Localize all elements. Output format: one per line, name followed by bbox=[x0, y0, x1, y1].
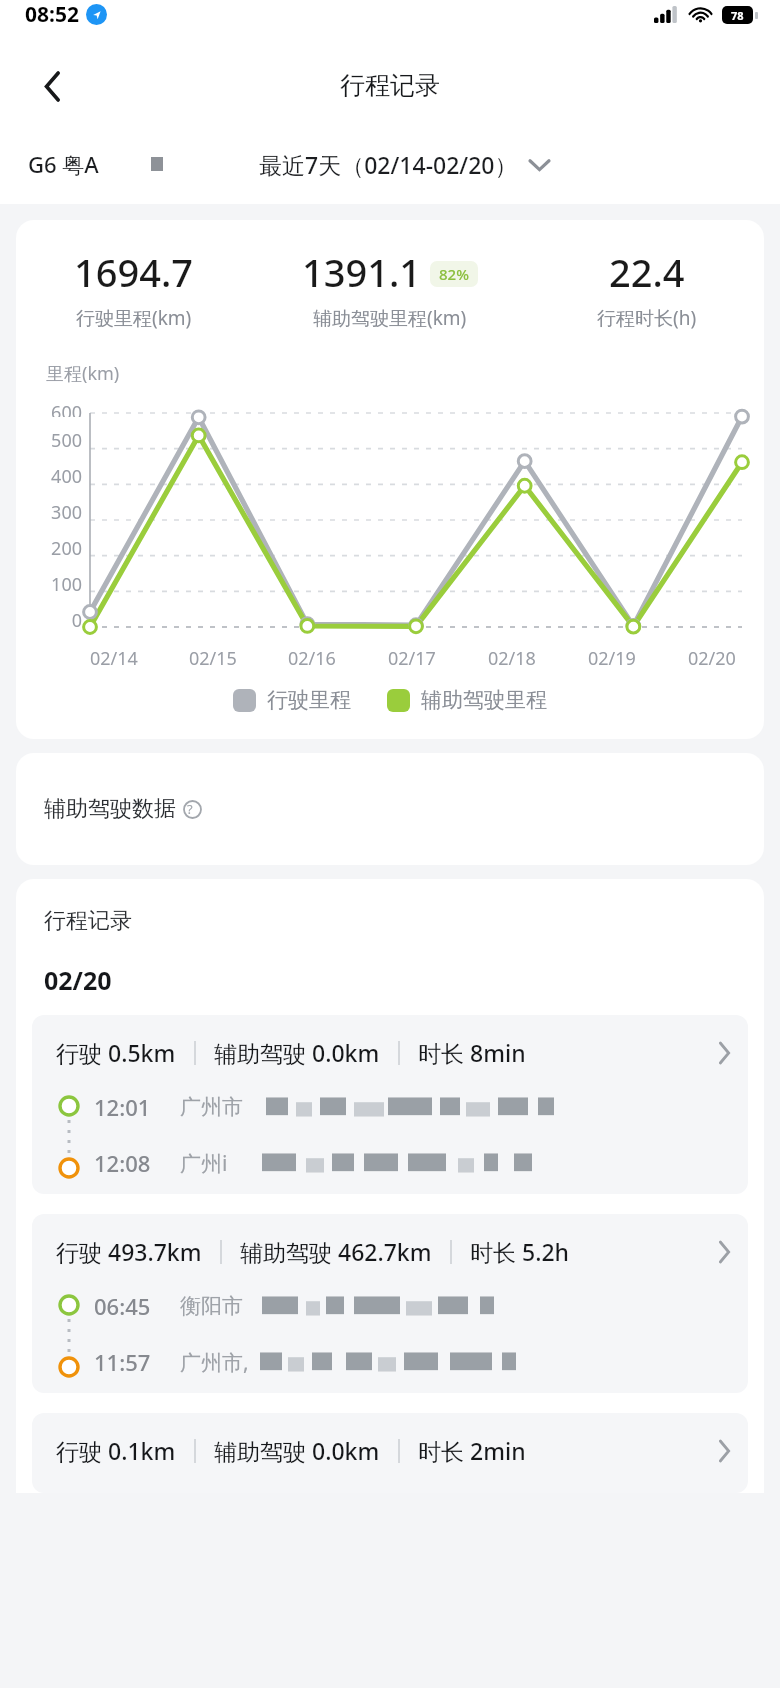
staticText: 12:01 bbox=[94, 1092, 151, 1122]
staticText: 行驶里程 bbox=[267, 687, 351, 713]
button[interactable]: 行驶 0.1km bbox=[32, 1413, 748, 1493]
staticText: 12:08 bbox=[94, 1148, 151, 1178]
staticText: 02/20 bbox=[44, 963, 112, 997]
staticText: 1694.7 bbox=[74, 246, 194, 298]
button[interactable]: 行驶里程 bbox=[233, 687, 351, 713]
button[interactable]: Back bbox=[28, 62, 76, 110]
staticText: 82% bbox=[439, 264, 469, 284]
staticText: 500 bbox=[51, 428, 82, 453]
staticText: 辅助驾驶 0.0km bbox=[214, 1037, 380, 1068]
staticText: G6 粤A bbox=[28, 149, 99, 179]
staticText: 辅助驾驶 462.7km bbox=[240, 1236, 432, 1267]
staticText: 78 bbox=[731, 8, 744, 23]
staticText: 行驶 0.1km bbox=[56, 1435, 176, 1466]
staticText: 广州市 bbox=[180, 1094, 243, 1120]
staticText: 广州i bbox=[180, 1149, 228, 1178]
staticText: 02/18 bbox=[488, 646, 536, 671]
staticText: 辅助驾驶里程(km) bbox=[313, 305, 467, 331]
staticText: 时长 2min bbox=[418, 1435, 526, 1466]
staticText: 02/20 bbox=[688, 646, 736, 671]
staticText: 02/14 bbox=[90, 646, 138, 671]
staticText: 辅助驾驶里程 bbox=[421, 687, 547, 713]
button[interactable]: G6 粤A bbox=[28, 149, 163, 179]
staticText: 辅助驾驶数据 bbox=[44, 795, 176, 823]
button[interactable]: 行驶 0.5km bbox=[32, 1015, 748, 1194]
staticText: 时长 8min bbox=[418, 1037, 526, 1068]
staticText: 最近7天（02/14-02/20） bbox=[259, 149, 518, 180]
staticText: 200 bbox=[51, 536, 82, 561]
button[interactable]: 行驶 493.7km bbox=[32, 1214, 748, 1393]
staticText: 11:57 bbox=[94, 1347, 151, 1377]
staticText: 衡阳市 bbox=[180, 1293, 243, 1319]
staticText: 22.4 bbox=[609, 246, 685, 298]
staticText: 行驶 493.7km bbox=[56, 1236, 202, 1267]
staticText: ? bbox=[187, 800, 193, 818]
staticText: 02/15 bbox=[189, 646, 237, 671]
staticText: 1391.1 bbox=[302, 246, 422, 298]
staticText: 行程记录 bbox=[44, 907, 132, 935]
staticText: 02/19 bbox=[588, 646, 636, 671]
staticText: 08:52 bbox=[25, 0, 79, 29]
staticText: 02/17 bbox=[388, 646, 436, 671]
staticText: 广州市, bbox=[180, 1348, 249, 1377]
staticText: 行程记录 bbox=[340, 70, 440, 101]
staticText: 0 bbox=[71, 608, 82, 633]
staticText: 100 bbox=[51, 572, 82, 597]
button[interactable]: 最近7天（02/14-02/20） bbox=[259, 149, 549, 180]
staticText: 300 bbox=[51, 500, 82, 525]
staticText: 辅助驾驶 0.0km bbox=[214, 1435, 380, 1466]
staticText: 02/16 bbox=[288, 646, 336, 671]
staticText: 时长 5.2h bbox=[470, 1236, 569, 1267]
staticText: 里程(km) bbox=[46, 361, 120, 386]
staticText: 行驶 0.5km bbox=[56, 1037, 176, 1068]
button[interactable]: 辅助驾驶里程 bbox=[387, 687, 547, 713]
staticText: 行驶里程(km) bbox=[76, 305, 192, 331]
staticText: 行程时长(h) bbox=[597, 305, 697, 331]
staticText: 400 bbox=[51, 464, 82, 489]
staticText: 600 bbox=[51, 400, 82, 417]
staticText: 06:45 bbox=[94, 1291, 151, 1321]
button[interactable]: 辅助驾驶数据 bbox=[16, 753, 764, 865]
